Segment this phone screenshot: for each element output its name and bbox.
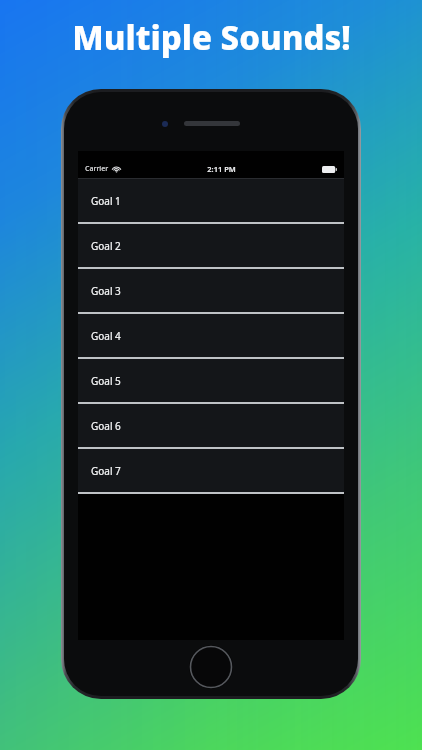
button[interactable]: Goal 1 [78,179,344,224]
button[interactable]: Goal 5 [78,359,344,404]
button[interactable]: Goal 4 [78,314,344,359]
staticText: Goal 4 [91,329,121,343]
staticText: Goal 5 [91,374,121,388]
staticText: Carrier [85,164,109,174]
button[interactable]: Goal 7 [78,449,344,494]
staticText: Goal 6 [91,419,121,433]
button[interactable]: Goal 2 [78,224,344,269]
staticText: Goal 7 [91,464,121,478]
button[interactable]: Goal 6 [78,404,344,449]
staticText: Goal 1 [91,194,121,208]
staticText: Goal 2 [91,239,121,253]
staticText: 2:11 PM [207,164,236,174]
button[interactable]: Goal 3 [78,269,344,314]
other: Home button [189,645,233,689]
staticText: Multiple Sounds! [72,15,351,60]
staticText: Goal 3 [91,284,121,298]
